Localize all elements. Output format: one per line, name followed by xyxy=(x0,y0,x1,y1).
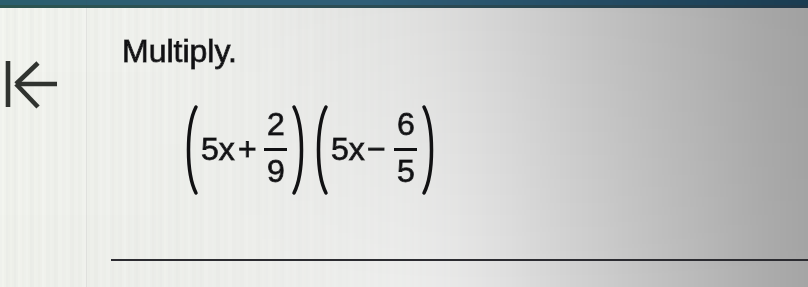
staticText: 5 xyxy=(397,153,415,189)
staticText: 2 xyxy=(267,106,285,142)
staticText: Multiply. xyxy=(122,33,237,69)
staticText: 5x xyxy=(331,131,365,167)
button[interactable]: Back xyxy=(0,52,72,118)
staticText: + xyxy=(238,131,257,167)
staticText: Multiply. xyxy=(122,33,237,69)
staticText: 5x xyxy=(331,131,365,167)
staticText: 9 xyxy=(267,153,285,189)
staticText: 2 xyxy=(267,106,285,142)
staticText: 9 xyxy=(267,153,285,189)
staticText: 6 xyxy=(397,106,415,142)
staticText: 5 xyxy=(397,153,415,189)
staticText: + xyxy=(238,131,257,167)
staticText: − xyxy=(367,131,386,167)
staticText: 5x xyxy=(201,131,235,167)
staticText: 5x xyxy=(201,131,235,167)
staticText: 6 xyxy=(397,106,415,142)
staticText: − xyxy=(367,131,386,167)
